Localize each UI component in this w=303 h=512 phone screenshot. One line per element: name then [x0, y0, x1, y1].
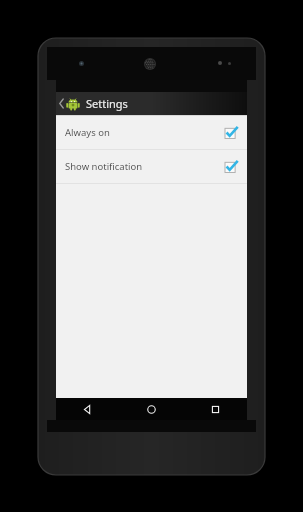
button[interactable]: Navigate up — [56, 92, 82, 115]
button[interactable]: Recent apps — [183, 398, 247, 420]
button[interactable]: Back — [56, 398, 119, 420]
staticText: Always on — [65, 126, 225, 139]
staticText: Settings — [86, 96, 128, 111]
button[interactable]: Home — [119, 398, 183, 420]
button[interactable]: Show notification — [56, 150, 247, 183]
button[interactable]: Always on — [56, 116, 247, 149]
staticText: Show notification — [65, 160, 225, 173]
